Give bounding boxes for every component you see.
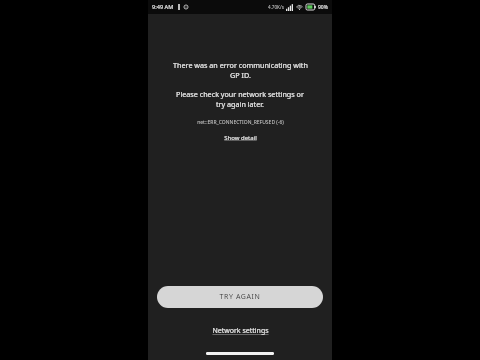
staticText: Show detail [224,134,257,142]
staticText: 9:49 AM [152,3,174,11]
staticText: net::ERR_CONNECTION_REFUSED (-6) [197,119,284,126]
staticText: Network settings [212,326,269,336]
staticText: There was an error communicating with GP… [173,60,308,80]
button[interactable]: Network settings [208,324,273,338]
staticText: 4.70K/s [268,4,284,10]
button[interactable]: TRY AGAIN [157,286,323,308]
button[interactable]: Show detail [221,133,260,143]
staticText: TRY AGAIN [219,292,261,302]
staticText: Please check your network settings or tr… [176,89,304,109]
staticText: 90% [318,4,328,11]
